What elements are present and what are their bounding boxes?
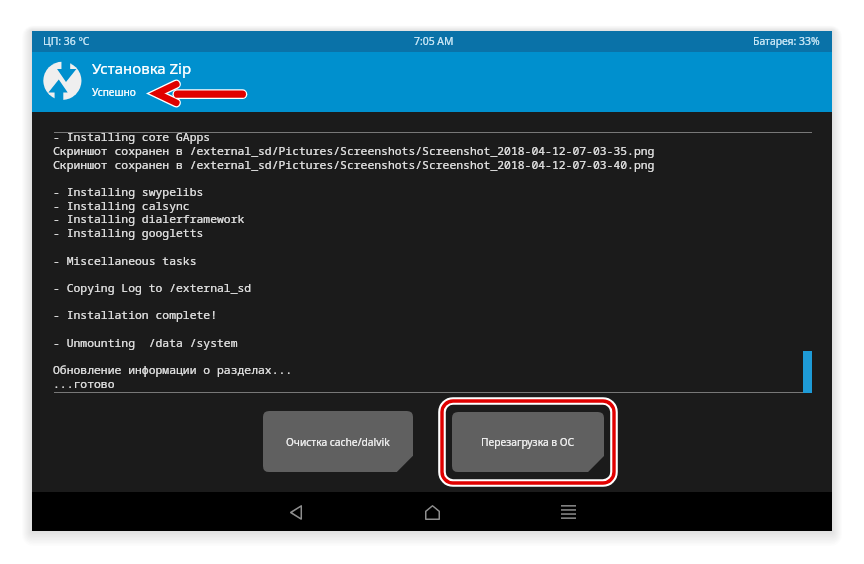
staticText: - Installing googletts bbox=[53, 225, 204, 241]
staticText: - Installing calsync bbox=[53, 198, 190, 214]
staticText: - Copying Log to /external_sd bbox=[53, 280, 252, 296]
staticText: ...готово bbox=[53, 376, 115, 392]
staticText: - Installing dialerframework bbox=[53, 211, 245, 227]
staticText: Перезагрузка в ОС bbox=[481, 435, 575, 449]
staticText: ЦП: 36 °C bbox=[43, 34, 90, 48]
staticText: Скриншот сохранен в /external_sd/Picture… bbox=[53, 143, 655, 159]
staticText: 7:05 AM bbox=[414, 34, 454, 48]
staticText: - Miscellaneous tasks bbox=[53, 253, 197, 269]
button[interactable]: Back bbox=[274, 494, 318, 530]
button[interactable]: Очистка cache/dalvik bbox=[263, 411, 413, 472]
staticText: Установка Zip bbox=[92, 58, 192, 78]
staticText: - Installing core GApps bbox=[53, 129, 211, 145]
staticText: - Installing swypelibs bbox=[53, 184, 204, 200]
button[interactable]: Recent apps bbox=[546, 494, 590, 530]
button[interactable]: Home bbox=[410, 494, 454, 530]
staticText: Успешно bbox=[92, 85, 136, 99]
staticText: - Installation complete! bbox=[53, 307, 218, 323]
staticText: Очистка cache/dalvik bbox=[286, 435, 390, 449]
staticText: Батарея: 33% bbox=[753, 34, 820, 48]
button[interactable]: Перезагрузка в ОС bbox=[452, 412, 604, 472]
staticText: Обновление информации о разделах... bbox=[53, 362, 293, 378]
staticText: Скриншот сохранен в /external_sd/Picture… bbox=[53, 157, 655, 173]
staticText: - Unmounting /data /system bbox=[53, 335, 238, 351]
